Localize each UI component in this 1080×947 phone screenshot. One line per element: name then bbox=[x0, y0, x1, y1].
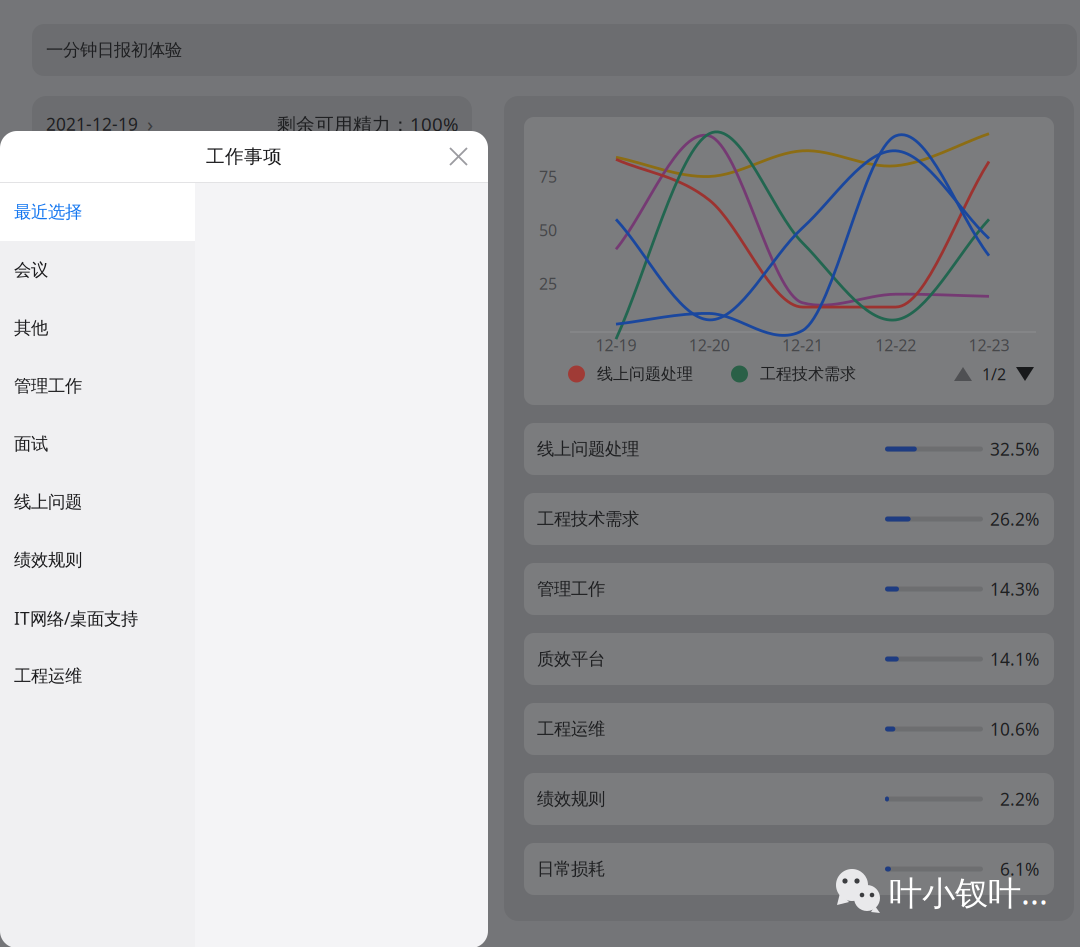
staticText: 其他 bbox=[14, 317, 48, 339]
staticText: 26.2% bbox=[990, 507, 1039, 530]
button[interactable]: 日常损耗 bbox=[524, 843, 1054, 895]
button[interactable]: 工程技术需求 bbox=[524, 493, 1054, 545]
button[interactable]: IT网络/桌面支持 bbox=[0, 589, 195, 647]
staticText: 工作事项 bbox=[206, 145, 282, 168]
staticText: 管理工作 bbox=[537, 578, 605, 600]
staticText: 10.6% bbox=[990, 717, 1039, 740]
button[interactable]: 线上问题 bbox=[0, 473, 195, 531]
button[interactable]: 管理工作 bbox=[524, 563, 1054, 615]
staticText: 最近选择 bbox=[14, 201, 82, 223]
staticText: 会议 bbox=[14, 259, 48, 281]
staticText: 质效平台 bbox=[537, 648, 605, 670]
staticText: 线上问题处理 bbox=[537, 438, 639, 460]
staticText: 12-19 bbox=[595, 334, 636, 356]
staticText: IT网络/桌面支持 bbox=[14, 606, 138, 629]
staticText: 75 bbox=[539, 166, 557, 187]
button[interactable]: 绩效规则 bbox=[0, 531, 195, 589]
staticText: 一分钟日报初体验 bbox=[46, 39, 182, 61]
staticText: 工程运维 bbox=[537, 718, 605, 740]
staticText: 工程技术需求 bbox=[760, 364, 856, 384]
staticText: 12-21 bbox=[782, 334, 823, 356]
button[interactable]: 质效平台 bbox=[524, 633, 1054, 685]
staticText: 工程技术需求 bbox=[537, 508, 639, 530]
staticText: 12-23 bbox=[968, 334, 1009, 356]
staticText: 绩效规则 bbox=[14, 549, 82, 571]
staticText: 工程运维 bbox=[14, 665, 82, 687]
staticText: 叶小钗叶小钗 bbox=[889, 870, 1053, 914]
staticText: 线上问题 bbox=[14, 491, 82, 513]
button[interactable]: 工程运维 bbox=[0, 647, 195, 705]
staticText: 线上问题处理 bbox=[597, 364, 693, 384]
button[interactable]: 会议 bbox=[0, 241, 195, 299]
staticText: 6.1% bbox=[1000, 857, 1039, 880]
staticText: 14.3% bbox=[990, 577, 1039, 600]
staticText: 50 bbox=[539, 219, 557, 241]
staticText: 绩效规则 bbox=[537, 788, 605, 810]
staticText: 管理工作 bbox=[14, 375, 82, 397]
staticText: 32.5% bbox=[990, 437, 1039, 460]
button[interactable]: 最近选择 bbox=[0, 183, 195, 241]
staticText: 剩余可用精力：100% bbox=[277, 112, 459, 136]
staticText: 12-22 bbox=[875, 334, 916, 356]
button[interactable]: 管理工作 bbox=[0, 357, 195, 415]
button[interactable]: 其他 bbox=[0, 299, 195, 357]
staticText: 12-20 bbox=[689, 334, 730, 356]
button[interactable]: 面试 bbox=[0, 415, 195, 473]
staticText: 1/2 bbox=[982, 363, 1006, 385]
button[interactable]: Next page bbox=[1016, 365, 1034, 383]
staticText: 面试 bbox=[14, 433, 48, 455]
staticText: 日常损耗 bbox=[537, 858, 605, 880]
staticText: › bbox=[147, 111, 153, 137]
button[interactable]: Previous page bbox=[954, 365, 972, 383]
staticText: 25 bbox=[539, 273, 557, 294]
button[interactable]: Close bbox=[433, 131, 488, 182]
button[interactable]: 绩效规则 bbox=[524, 773, 1054, 825]
button[interactable]: 线上问题处理 bbox=[524, 423, 1054, 475]
staticText: 2.2% bbox=[1000, 787, 1039, 810]
button[interactable]: 工程运维 bbox=[524, 703, 1054, 755]
staticText: 2021-12-19 bbox=[46, 112, 138, 135]
staticText: 14.1% bbox=[990, 647, 1039, 670]
